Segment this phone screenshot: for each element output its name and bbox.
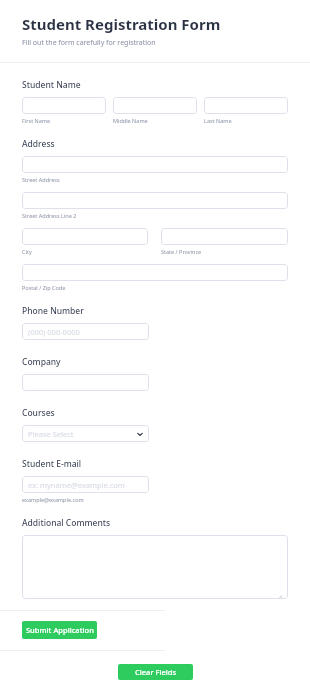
button[interactable]: First Name — [22, 97, 106, 114]
button[interactable]: Street Address Line 2 — [22, 192, 288, 209]
staticText: State / Province — [161, 248, 202, 255]
staticText: ex: myname@example.com — [28, 480, 125, 490]
button[interactable]: Company — [22, 374, 149, 391]
button[interactable]: City — [22, 228, 148, 245]
staticText: Address — [22, 138, 55, 150]
staticText: Fill out the form carefully for registra… — [22, 38, 156, 48]
button[interactable]: Street Address — [22, 156, 288, 173]
button[interactable]: Student E-mail — [22, 476, 149, 493]
staticText: Please Select — [28, 429, 74, 439]
button[interactable]: Submit Application — [22, 621, 97, 639]
staticText: Clear Fields — [135, 667, 177, 677]
staticText: Submit Application — [26, 625, 94, 635]
staticText: First Name — [22, 117, 51, 124]
staticText: Middle Name — [113, 117, 148, 124]
staticText: Postal / Zip Code — [22, 284, 66, 291]
staticText: Courses — [22, 407, 55, 419]
staticText: Street Address Line 2 — [22, 212, 77, 219]
staticText: Student E-mail — [22, 458, 82, 470]
staticText: example@example.com — [22, 496, 84, 503]
button[interactable]: Last Name — [204, 97, 288, 114]
staticText: Company — [22, 356, 61, 368]
button[interactable]: Phone Number — [22, 323, 149, 340]
staticText: (000) 000-0000 — [28, 327, 80, 337]
staticText: Student Registration Form — [22, 14, 221, 34]
button[interactable]: Courses — [22, 425, 149, 442]
button[interactable]: State / Province — [161, 228, 288, 245]
button[interactable]: Clear Fields — [118, 664, 193, 680]
button[interactable]: Middle Name — [113, 97, 197, 114]
staticText: Additional Comments — [22, 517, 111, 529]
staticText: City — [22, 248, 32, 255]
button[interactable]: Additional Comments — [22, 535, 288, 599]
button[interactable]: Postal / Zip Code — [22, 264, 288, 281]
staticText: Last Name — [204, 117, 232, 124]
staticText: Student Name — [22, 79, 81, 91]
staticText: Phone Number — [22, 305, 84, 317]
staticText: Street Address — [22, 176, 60, 183]
